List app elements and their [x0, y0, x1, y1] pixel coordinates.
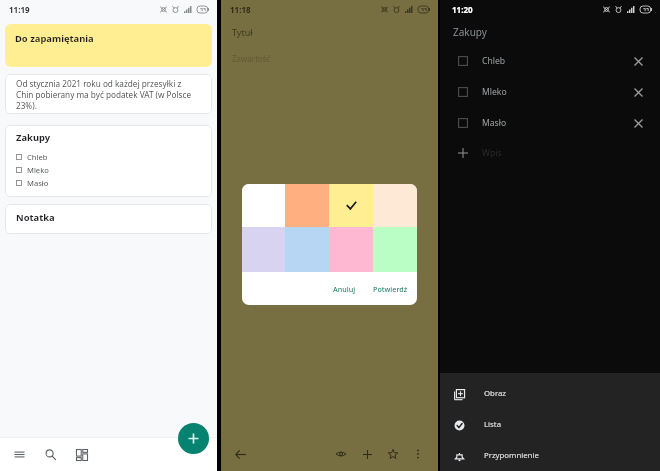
button[interactable]: Notatka [5, 204, 212, 234]
button[interactable]: Lista [440, 409, 660, 440]
button[interactable]: Obraz [440, 378, 660, 409]
button[interactable] [242, 184, 285, 227]
button[interactable] [373, 184, 417, 227]
button[interactable]: Mleko [440, 76, 660, 107]
staticText: Potwierdź [373, 284, 408, 294]
staticText: Lista [484, 419, 502, 430]
button[interactable]: Od stycznia 2021 roku od każdej przesyłk… [5, 74, 212, 114]
button[interactable]: Menu [9, 444, 29, 464]
staticText: Zakupy [16, 131, 51, 144]
button[interactable]: Przypomnienie [440, 440, 660, 471]
staticText: Anuluj [333, 284, 356, 294]
staticText: Mleko [482, 86, 507, 98]
button[interactable]: Wpis [440, 138, 660, 168]
staticText: 11:19 [9, 4, 30, 15]
button[interactable]: Do zapamiętania [5, 24, 212, 67]
button[interactable]: Delete Chleb [629, 52, 647, 70]
button[interactable]: Delete Mleko [629, 83, 647, 101]
staticText: 11:18 [230, 4, 251, 15]
button[interactable]: Preview [331, 444, 351, 464]
staticText: Masło [482, 117, 507, 129]
button[interactable]: Search [40, 444, 60, 464]
button[interactable]: Potwierdź [367, 279, 414, 299]
staticText: Chleb [27, 152, 48, 162]
button[interactable]: Masło [440, 107, 660, 138]
staticText: Mleko [27, 165, 49, 175]
button[interactable]: Zakupy [5, 125, 212, 197]
button[interactable]: Favorite [383, 444, 403, 464]
staticText: Od stycznia 2021 roku od każdej przesyłk… [16, 78, 200, 111]
staticText: Chleb [482, 55, 506, 67]
staticText: Przypomnienie [484, 450, 539, 461]
button[interactable]: Grid view [71, 444, 91, 464]
staticText: Masło [27, 178, 49, 188]
staticText: Wpis [482, 147, 502, 159]
staticText: Zawartość [232, 53, 271, 64]
button[interactable]: Chleb [440, 45, 660, 76]
staticText: Do zapamiętania [15, 32, 94, 45]
button[interactable]: Add note [178, 423, 209, 454]
button[interactable]: Add [357, 444, 377, 464]
button[interactable] [329, 184, 373, 227]
staticText: Obraz [484, 388, 506, 399]
button[interactable]: Delete Masło [629, 114, 647, 132]
button[interactable]: Back [230, 444, 250, 464]
button[interactable]: More options [408, 444, 428, 464]
staticText: Notatka [16, 211, 55, 224]
button[interactable]: Anuluj [327, 279, 362, 299]
staticText: Zakupy [453, 25, 487, 39]
staticText: Tytuł [232, 26, 253, 38]
staticText: 11:20 [452, 4, 473, 15]
